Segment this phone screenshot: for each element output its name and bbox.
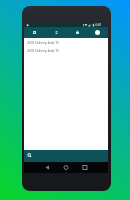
button[interactable]: Search — [26, 152, 33, 159]
button[interactable]: 3502 Shkmrp Anlp TS — [24, 47, 108, 55]
staticText: 3502 Shkmrp Anlp TS — [27, 49, 59, 53]
button[interactable]: Account — [95, 30, 100, 35]
button[interactable]: Gallery — [31, 29, 37, 35]
staticText: 3502 Shkmrp Anlp TS — [27, 41, 59, 45]
button[interactable]: Books — [53, 29, 59, 35]
button[interactable]: Bag — [74, 29, 80, 35]
staticText: 4:48 — [95, 23, 102, 27]
button[interactable]: 3502 Shkmrp Anlp TS — [24, 39, 108, 47]
